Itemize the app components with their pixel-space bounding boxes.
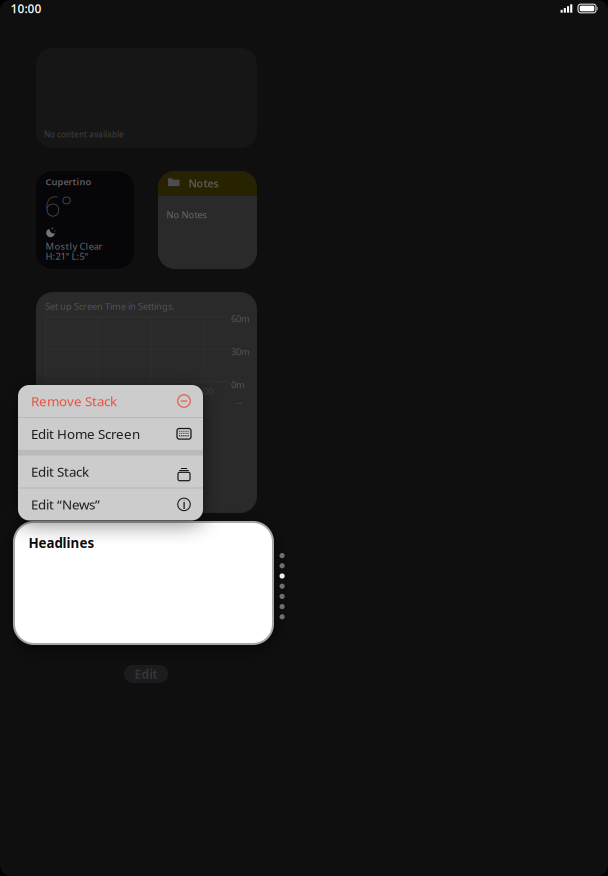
- staticText: No Notes: [166, 208, 206, 221]
- staticText: H:21° L:5°: [45, 250, 88, 262]
- staticText: Edit Home Screen: [31, 425, 140, 443]
- staticText: 10:00: [10, 0, 41, 16]
- staticText: Mostly Clear: [45, 240, 102, 252]
- staticText: i: [182, 496, 185, 512]
- staticText: 60m: [231, 312, 250, 325]
- button[interactable]: Edit: [124, 665, 168, 683]
- staticText: Notes: [188, 176, 218, 190]
- staticText: No content available: [44, 129, 124, 140]
- button[interactable]: Edit “News”: [18, 488, 203, 520]
- staticText: Cupertino: [45, 175, 91, 188]
- staticText: --: [236, 396, 242, 408]
- staticText: Edit Stack: [31, 463, 89, 480]
- button[interactable]: Remove Stack: [18, 385, 203, 417]
- staticText: Set up Screen Time in Settings.: [45, 300, 175, 312]
- staticText: 00: [203, 385, 213, 397]
- staticText: 6°: [44, 187, 72, 224]
- staticText: 30m: [231, 345, 250, 358]
- staticText: Headlines: [28, 534, 94, 552]
- button[interactable]: Edit Stack: [18, 456, 203, 488]
- button[interactable]: Edit Home Screen: [18, 418, 203, 450]
- staticText: 0m: [231, 378, 245, 391]
- staticText: Remove Stack: [31, 392, 117, 410]
- staticText: Edit: [134, 666, 157, 682]
- staticText: Edit “News”: [31, 495, 100, 513]
